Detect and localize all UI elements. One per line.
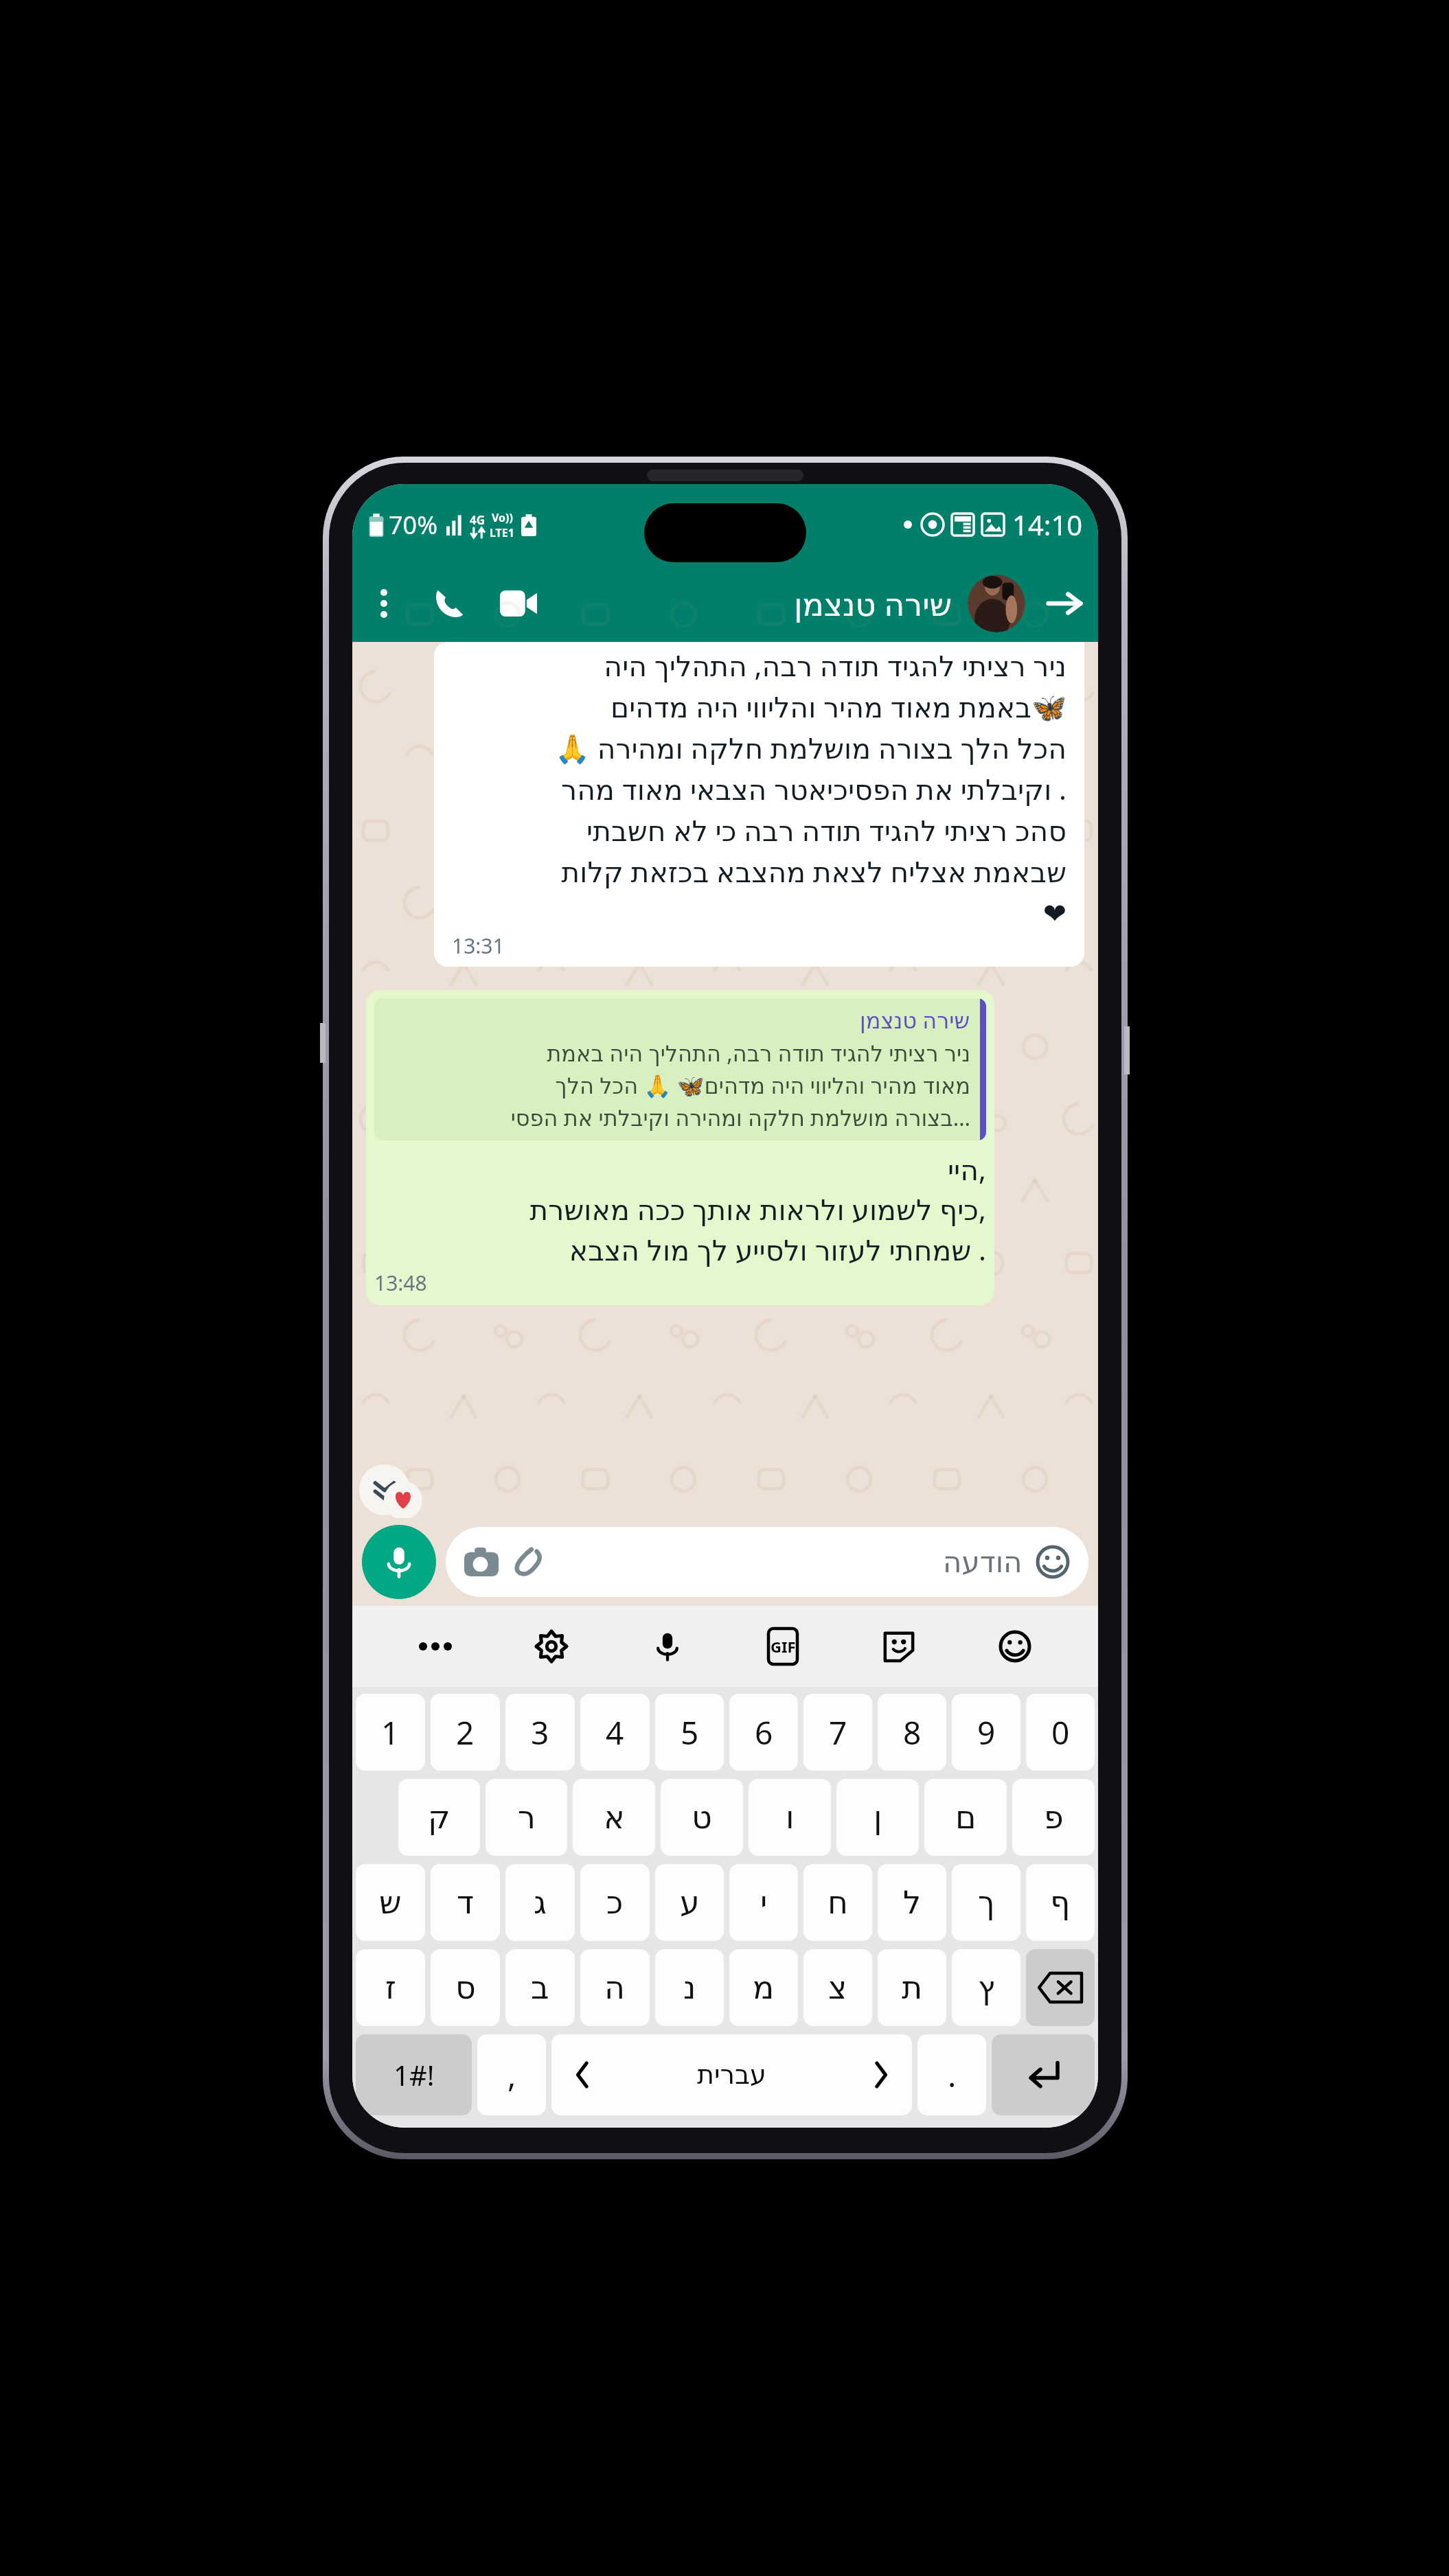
staticText: ט [692, 1799, 712, 1836]
staticText: ג [534, 1884, 547, 1921]
button[interactable]: ן [836, 1779, 919, 1856]
staticText: 1 [381, 1711, 400, 1754]
staticText: ד [457, 1884, 475, 1921]
staticText: היי, כיף לשמוע ולראות אותך ככה מאושרת, ש… [374, 1150, 986, 1269]
button[interactable]: . [917, 2034, 986, 2115]
button[interactable]: Record voice message [362, 1525, 436, 1599]
button[interactable]: 7 [803, 1694, 872, 1771]
staticText: עברית [697, 2060, 766, 2090]
staticText: 8 [903, 1711, 922, 1754]
staticText: י [760, 1884, 768, 1921]
staticText: ו [786, 1799, 795, 1836]
staticText: 5 [681, 1711, 699, 1754]
button[interactable]: 8 [878, 1694, 946, 1771]
button[interactable]: Voice input [635, 1613, 700, 1679]
button[interactable]: ם [924, 1779, 1007, 1856]
button[interactable]: 9 [952, 1694, 1020, 1771]
button[interactable]: Back [1035, 574, 1094, 633]
button[interactable]: Contact photo [968, 575, 1025, 632]
button[interactable]: פ [1012, 1779, 1095, 1856]
button[interactable]: ב [505, 1949, 575, 2026]
button[interactable]: י [729, 1864, 798, 1941]
button[interactable]: ל [878, 1864, 946, 1941]
staticText: מ [753, 1969, 775, 2006]
button[interactable]: כ [580, 1864, 650, 1941]
button[interactable]: 6 [729, 1694, 798, 1771]
button[interactable]: 1 [356, 1694, 425, 1771]
button[interactable]: , [477, 2034, 546, 2115]
button[interactable]: עברית [551, 2034, 912, 2115]
staticText: ץ [978, 1969, 995, 2006]
button[interactable]: ס [431, 1949, 500, 2026]
staticText: ניר רציתי להגיד תודה רבה, התהליך היה באמ… [452, 646, 1066, 930]
staticText: 2 [456, 1711, 475, 1754]
staticText: שירה טנצמן [860, 1005, 970, 1035]
button[interactable]: Scroll to bottom [359, 1464, 410, 1515]
staticText: . [948, 2054, 957, 2097]
button[interactable]: 4 [580, 1694, 650, 1771]
button[interactable]: מ [729, 1949, 798, 2026]
staticText: ן [874, 1799, 882, 1836]
button[interactable]: ץ [952, 1949, 1020, 2026]
button[interactable]: Stickers [866, 1613, 932, 1679]
staticText: 70% [389, 508, 438, 542]
button[interactable]: Camera [462, 1543, 501, 1581]
button[interactable]: Video call [483, 568, 554, 639]
button[interactable]: ניר רציתי להגיד תודה רבה, התהליך היה באמ… [434, 642, 1084, 967]
button[interactable]: Enter [992, 2034, 1095, 2115]
staticText: צ [828, 1969, 847, 2006]
staticText: 14:10 [1012, 506, 1083, 543]
staticText: 4 [606, 1711, 624, 1754]
button[interactable]: Voice call [415, 570, 483, 637]
button[interactable]: ז [356, 1949, 425, 2026]
button[interactable]: ר [486, 1779, 567, 1856]
staticText: 1#! [393, 2056, 435, 2093]
button[interactable]: א [573, 1779, 655, 1856]
button[interactable]: Emoji [982, 1613, 1048, 1679]
button[interactable]: ק [398, 1779, 480, 1856]
staticText: 6 [755, 1711, 773, 1754]
button[interactable]: Attach [510, 1543, 549, 1581]
staticText: LTE1 [490, 525, 514, 540]
staticText: ר [518, 1799, 536, 1836]
staticText: ניר רציתי להגיד תודה רבה, התהליך היה באמ… [385, 1038, 970, 1132]
button[interactable]: ת [878, 1949, 946, 2026]
button[interactable]: More [402, 1613, 468, 1679]
button[interactable]: Backspace [1026, 1949, 1095, 2026]
staticText: 7 [829, 1711, 847, 1754]
button[interactable]: More options [352, 572, 415, 635]
staticText: ע [680, 1884, 700, 1921]
button[interactable]: GIF [750, 1613, 816, 1679]
button[interactable]: ד [431, 1864, 500, 1941]
button[interactable]: 1#! [356, 2034, 472, 2115]
button[interactable]: 2 [431, 1694, 500, 1771]
button[interactable]: ע [655, 1864, 724, 1941]
staticText: נ [683, 1969, 696, 2006]
staticText: ק [428, 1799, 450, 1836]
button[interactable]: ו [749, 1779, 831, 1856]
button[interactable]: 0 [1026, 1694, 1095, 1771]
staticText: 13:31 [452, 932, 505, 960]
button[interactable]: 5 [655, 1694, 724, 1771]
button[interactable]: 3 [505, 1694, 575, 1771]
button[interactable]: ה [580, 1949, 650, 2026]
staticText: GIF [771, 1636, 796, 1657]
staticText: 4G [470, 512, 486, 528]
button[interactable]: Emoji [1034, 1543, 1072, 1581]
button[interactable]: ך [952, 1864, 1020, 1941]
button[interactable]: ט [661, 1779, 743, 1856]
staticText: , [507, 2054, 516, 2097]
staticText: כ [606, 1884, 624, 1921]
button[interactable]: Keyboard settings [518, 1613, 584, 1679]
button[interactable]: צ [803, 1949, 872, 2026]
button[interactable]: ש [356, 1864, 425, 1941]
button[interactable]: ף [1026, 1864, 1095, 1941]
staticText: ב [531, 1969, 549, 2006]
button[interactable]: ג [505, 1864, 575, 1941]
button[interactable]: ח [803, 1864, 872, 1941]
button[interactable]: נ [655, 1949, 724, 2026]
button[interactable]: Camera [446, 1527, 1088, 1597]
button[interactable]: שירה טנצמן [366, 990, 994, 1305]
staticText: ת [902, 1969, 923, 2006]
staticText: 13:48 [374, 1269, 427, 1297]
